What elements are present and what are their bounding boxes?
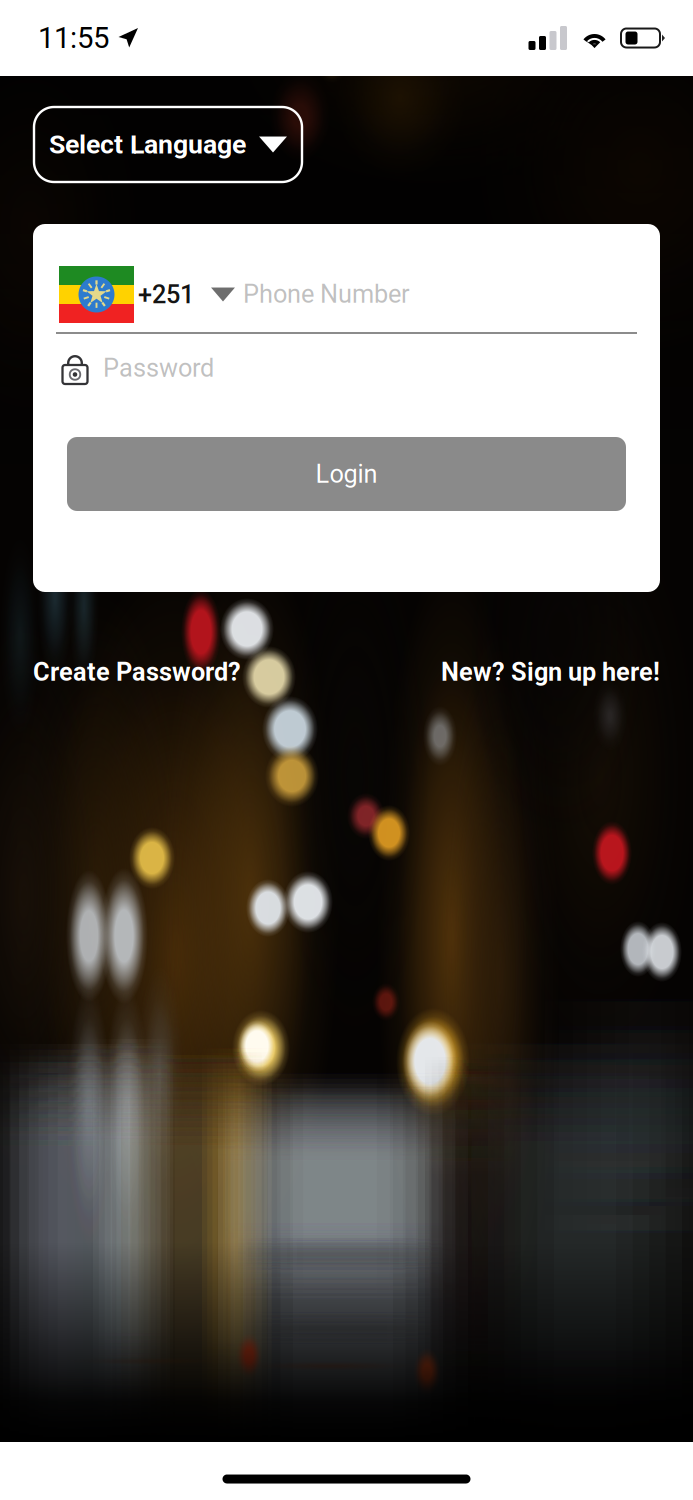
staticText: 11:55 (38, 21, 109, 55)
staticText: New? Sign up here! (441, 657, 660, 687)
button[interactable]: Login (67, 437, 626, 511)
button[interactable]: Select Language (34, 107, 302, 182)
staticText: Phone Number (243, 279, 410, 309)
button[interactable]: Create Password? (33, 657, 241, 687)
staticText: Select Language (49, 129, 246, 160)
staticText: +251 (138, 280, 194, 309)
button[interactable]: +251 (59, 266, 268, 323)
button[interactable]: New? Sign up here! (441, 657, 660, 687)
staticText: Password (103, 353, 214, 383)
staticText: Login (315, 459, 377, 489)
staticText: Create Password? (33, 657, 241, 687)
